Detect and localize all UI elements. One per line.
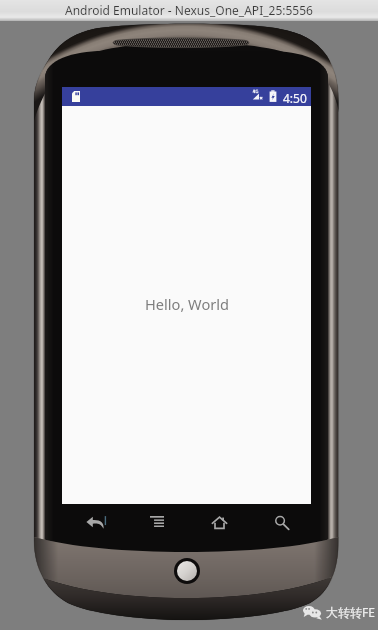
- button[interactable]: Menu: [140, 509, 173, 535]
- staticText: Hello, World: [145, 294, 229, 314]
- button[interactable]: Back: [79, 509, 112, 535]
- staticText: 大转转FE: [326, 604, 375, 620]
- button[interactable]: Home: [202, 509, 236, 535]
- staticText: 4:50: [283, 90, 307, 106]
- staticText: Android Emulator - Nexus_One_API_25:5556: [65, 2, 313, 18]
- button[interactable]: Search: [265, 509, 298, 535]
